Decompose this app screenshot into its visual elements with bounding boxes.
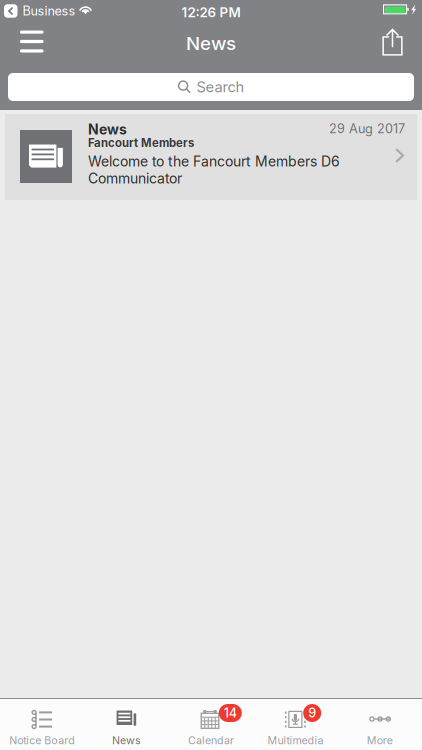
staticText: Fancourt Members	[88, 136, 194, 150]
staticText: More	[367, 734, 393, 747]
staticText: News	[112, 734, 141, 747]
staticText: Search	[196, 78, 244, 96]
staticText: News	[186, 32, 236, 55]
button[interactable]: Notice Board	[0, 699, 84, 750]
staticText: 29 Aug 2017	[329, 121, 405, 136]
button[interactable]: Search	[0, 66, 422, 110]
staticText: 12:26 PM	[181, 4, 240, 20]
button[interactable]: News	[5, 114, 417, 200]
staticText: Calendar	[188, 734, 234, 747]
button[interactable]: Share	[370, 22, 415, 66]
button[interactable]: 14	[169, 699, 253, 750]
button[interactable]: Back to Business	[0, 0, 79, 23]
button[interactable]: Menu	[0, 22, 55, 66]
button[interactable]: News	[84, 699, 169, 750]
staticText: 9	[308, 705, 316, 721]
staticText: News	[88, 121, 127, 138]
staticText: Welcome to the Fancourt Members D6 Commu…	[88, 153, 340, 187]
staticText: 14	[224, 705, 237, 721]
staticText: Business	[22, 3, 75, 19]
button[interactable]: 9	[253, 699, 338, 750]
staticText: Notice Board	[9, 734, 75, 747]
staticText: Multimedia	[267, 734, 323, 747]
button[interactable]: More	[338, 699, 422, 750]
